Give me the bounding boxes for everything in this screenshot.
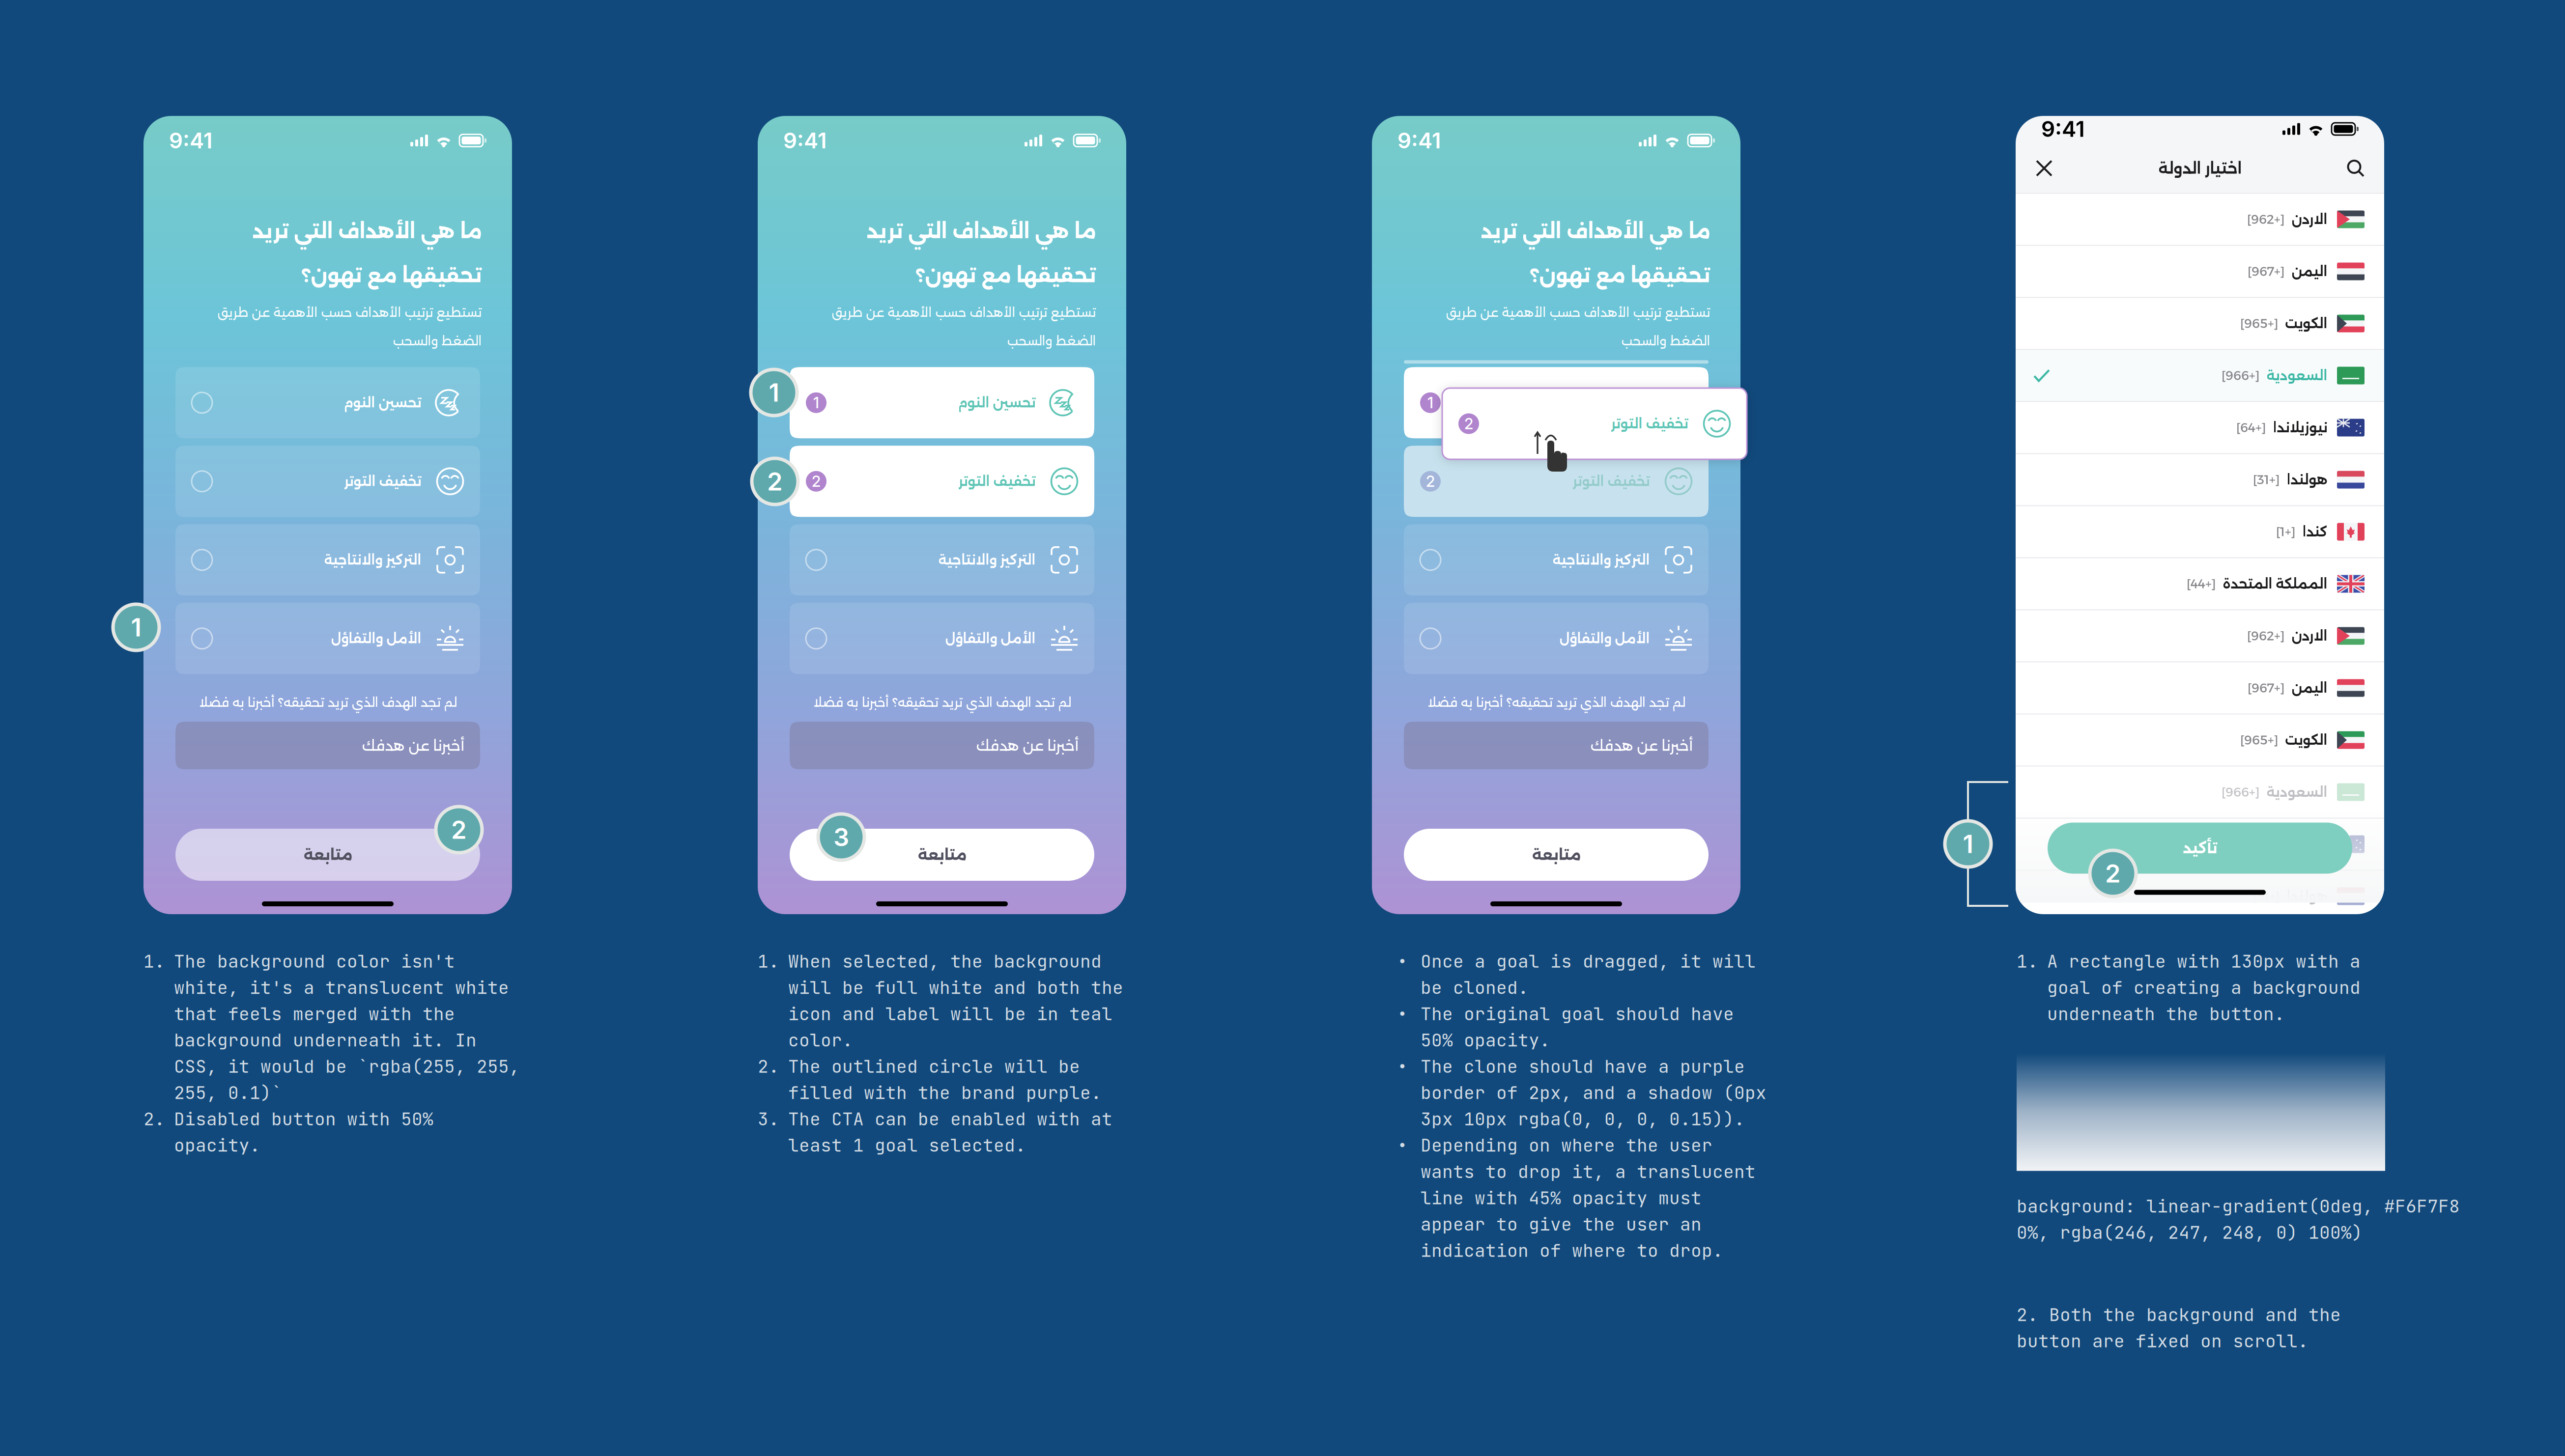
staticText: أخبرنا عن هدفك (1590, 737, 1693, 754)
staticText: 2 (767, 466, 783, 496)
staticText: الاردن (2291, 628, 2327, 644)
button[interactable]: تخفيف التوتر (175, 446, 480, 517)
staticText: السعودية (2266, 784, 2327, 800)
staticText: تحقيقها مع تهون؟ (915, 263, 1096, 287)
button[interactable]: [31+] (2016, 871, 2384, 922)
staticText: التركيز والانتاجية (324, 552, 421, 568)
staticText: تستطيع ترتيب الأهداف حسب الأهمية عن طريق (1446, 305, 1710, 320)
staticText: The original goal should have (1421, 1002, 1734, 1025)
button[interactable]: الأمل والتفاؤل (790, 603, 1094, 674)
staticText: icon and label will be in teal (788, 1002, 1112, 1025)
button[interactable]: متابعة (1404, 829, 1709, 881)
button[interactable]: [1+] (2016, 506, 2384, 557)
staticText: [31+] (2253, 889, 2280, 904)
staticText: السعودية (2266, 368, 2327, 384)
button[interactable]: [965+] (2016, 298, 2384, 349)
staticText: متابعة (303, 846, 352, 864)
button[interactable]: تحسين النوم (175, 367, 480, 438)
button[interactable]: التركيز والانتاجية (790, 524, 1094, 596)
button[interactable]: 2 (790, 446, 1094, 517)
staticText: الضغط والسحب (1007, 333, 1096, 348)
button[interactable]: التركيز والانتاجية (175, 524, 480, 596)
staticText: متابعة (1532, 846, 1581, 864)
staticText: تخفيف التوتر (344, 473, 421, 489)
staticText: التركيز والانتاجية (938, 552, 1035, 568)
button[interactable]: [31+] (2016, 454, 2384, 505)
button[interactable]: 1 (790, 367, 1094, 438)
staticText: اختيار الدولة (2158, 159, 2242, 177)
button[interactable]: [64+] (2016, 402, 2384, 453)
staticText: 1 (131, 612, 141, 642)
staticText: 1 (1427, 394, 1433, 412)
staticText: 1 (813, 394, 819, 412)
staticText: will be full white and both the (788, 976, 1123, 999)
button[interactable]: [967+] (2016, 246, 2384, 297)
staticText: اليمن (2291, 680, 2327, 696)
button[interactable]: [966+] (2016, 767, 2384, 818)
button[interactable]: [967+] (2016, 662, 2384, 714)
button[interactable]: التركيز والانتاجية (1404, 524, 1709, 596)
staticText: that feels merged with the (174, 1002, 455, 1025)
staticText: تخفيف التوتر (1572, 473, 1650, 489)
staticText: هولندا (2286, 888, 2327, 904)
staticText: 9:41 (783, 127, 827, 154)
staticText: 1. (2017, 950, 2038, 973)
staticText: تحقيقها مع تهون؟ (1530, 263, 1710, 287)
button[interactable]: [64+] (2016, 819, 2384, 870)
staticText: • (1397, 1002, 1408, 1025)
staticText: • (1397, 950, 1408, 973)
button[interactable]: [962+] (2016, 194, 2384, 245)
staticText: color. (788, 1028, 853, 1052)
staticText: تحسين النوم (343, 395, 421, 411)
staticText: 9:41 (169, 127, 213, 154)
staticText: هولندا (2286, 472, 2327, 488)
button[interactable]: 2 (1404, 446, 1709, 517)
staticText: 2 (1426, 472, 1435, 490)
staticText: الكويت (2285, 732, 2327, 748)
staticText: ما هي الأهداف التي تريد (252, 219, 482, 243)
button[interactable]: متابعة (175, 829, 480, 881)
button[interactable]: متابعة (790, 829, 1094, 881)
staticText: least 1 goal selected. (788, 1134, 1026, 1157)
staticText: [966+] (2222, 368, 2259, 383)
staticText: [962+] (2247, 628, 2284, 644)
staticText: • (1397, 1055, 1408, 1078)
staticText: 2. (758, 1055, 779, 1078)
staticText: [967+] (2248, 680, 2284, 696)
button[interactable]: الأمل والتفاؤل (1404, 603, 1709, 674)
button[interactable]: [966+] (2016, 350, 2384, 401)
staticText: button are fixed on scroll. (2017, 1329, 2308, 1353)
button[interactable]: الأمل والتفاؤل (175, 603, 480, 674)
staticText: الأمل والتفاؤل (945, 630, 1035, 646)
staticText: الأمل والتفاؤل (331, 630, 421, 646)
staticText: الضغط والسحب (1621, 333, 1710, 348)
button[interactable]: [962+] (2016, 610, 2384, 661)
staticText: be cloned. (1421, 976, 1529, 999)
staticText: appear to give the user an (1421, 1212, 1702, 1236)
staticText: CSS, it would be `rgba(255, 255, (174, 1055, 520, 1078)
staticText: line with 45% opacity must (1421, 1186, 1702, 1210)
staticText: 2 (2105, 858, 2121, 888)
staticText: كندا (2302, 524, 2327, 540)
staticText: 1 (769, 377, 779, 408)
staticText: التركيز والانتاجية (1552, 552, 1650, 568)
staticText: opacity. (174, 1134, 260, 1157)
button[interactable]: [965+] (2016, 714, 2384, 766)
button[interactable]: Search (2339, 152, 2372, 185)
staticText: Depending on where the user (1421, 1134, 1712, 1157)
staticText: لم تجد الهدف الذي تريد تحقيقه؟ أخبرنا به… (199, 695, 457, 710)
staticText: Once a goal is dragged, it will (1421, 950, 1756, 973)
button[interactable]: 1 (1404, 367, 1709, 438)
button[interactable]: [44+] (2016, 558, 2384, 609)
staticText: 2. (143, 1107, 165, 1131)
staticText: لم تجد الهدف الذي تريد تحقيقه؟ أخبرنا به… (813, 695, 1071, 710)
staticText: goal of creating a background (2047, 976, 2361, 999)
staticText: 3. (758, 1107, 779, 1131)
button[interactable]: Close (2027, 152, 2061, 185)
staticText: ما هي الأهداف التي تريد (1481, 219, 1710, 243)
button[interactable]: تأكيد (2048, 823, 2352, 874)
staticText: تستطيع ترتيب الأهداف حسب الأهمية عن طريق (217, 305, 482, 320)
staticText: [967+] (2248, 264, 2284, 279)
